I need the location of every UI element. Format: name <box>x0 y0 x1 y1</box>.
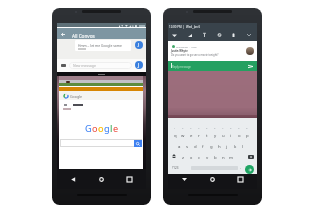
staticText: 8 <box>230 126 232 129</box>
staticText: 12:00 PM | Wed, Jan 6 <box>169 25 217 30</box>
button[interactable]: Back <box>182 177 187 182</box>
staticText: m <box>229 154 234 160</box>
staticText: Google <box>70 94 94 99</box>
staticText: Do you want to go see a movie tonight? <box>171 53 243 58</box>
button[interactable]: f <box>199 143 207 149</box>
staticText: h <box>218 143 221 149</box>
button[interactable]: Recents <box>238 177 243 182</box>
button[interactable]: Enter <box>245 165 254 174</box>
button[interactable]: Backspace <box>248 155 254 159</box>
staticText: k <box>234 143 237 149</box>
button[interactable]: b <box>211 154 219 160</box>
staticText: z <box>182 154 185 160</box>
staticText: s <box>186 143 189 149</box>
button[interactable]: i <box>227 132 235 138</box>
staticText: 6 <box>214 126 216 129</box>
staticText: o <box>238 132 241 138</box>
button[interactable]: Shift <box>172 154 176 158</box>
button[interactable]: j <box>223 143 231 149</box>
staticText: f <box>202 143 204 149</box>
button[interactable]: t <box>203 132 211 138</box>
button[interactable]: Expand <box>247 34 251 36</box>
staticText: a <box>178 143 181 149</box>
button[interactable]: Mobile signal <box>188 34 192 37</box>
button[interactable]: l <box>239 143 247 149</box>
button[interactable] <box>168 61 257 71</box>
button[interactable]: m <box>227 154 235 160</box>
button[interactable]: k <box>231 143 239 149</box>
button[interactable]: Do not disturb <box>217 33 222 37</box>
staticText: v <box>206 154 209 160</box>
button[interactable]: q <box>171 132 179 138</box>
button[interactable]: w <box>179 132 187 138</box>
staticText: New message <box>73 63 113 68</box>
button[interactable]: o <box>235 132 243 138</box>
staticText: l <box>242 143 244 149</box>
staticText: 2 <box>182 126 184 129</box>
staticText: u <box>222 132 225 138</box>
staticText: w <box>181 132 185 138</box>
button[interactable]: Battery <box>232 33 235 37</box>
button[interactable]: a <box>175 143 183 149</box>
staticText: 3 <box>190 126 192 129</box>
staticText: b <box>214 154 217 160</box>
staticText: 7 <box>222 126 224 129</box>
staticText: y <box>214 132 217 138</box>
staticText: g <box>210 143 213 149</box>
staticText: Instagram · now <box>176 45 212 50</box>
staticText: r <box>198 132 200 138</box>
staticText: J <box>138 62 140 68</box>
staticText: p <box>246 132 249 138</box>
button[interactable] <box>69 62 132 69</box>
staticText: 5 <box>206 126 208 129</box>
button[interactable]: Wi-Fi <box>172 34 177 37</box>
button[interactable]: s <box>183 143 191 149</box>
button[interactable]: c <box>195 154 203 160</box>
staticText: e <box>113 122 119 135</box>
button[interactable]: Back <box>71 177 76 182</box>
button[interactable]: Recents <box>127 177 132 182</box>
button[interactable]: y <box>211 132 219 138</box>
button[interactable]: Search <box>134 140 142 147</box>
button[interactable]: Home <box>210 177 215 182</box>
button[interactable]: r <box>195 132 203 138</box>
button[interactable]: x <box>187 154 195 160</box>
button[interactable] <box>57 28 146 40</box>
staticText: e <box>190 132 193 138</box>
staticText: i <box>230 132 232 138</box>
button[interactable]: g <box>207 143 215 149</box>
button[interactable]: n <box>219 154 227 160</box>
staticText: n <box>222 154 225 160</box>
staticText: g <box>104 122 110 135</box>
staticText: 0 <box>246 126 248 129</box>
staticText: J <box>138 42 140 48</box>
button[interactable] <box>60 139 142 147</box>
button[interactable]: d <box>191 143 199 149</box>
button[interactable]: ?123 <box>172 166 182 171</box>
button[interactable]: v <box>203 154 211 160</box>
button[interactable] <box>75 40 131 51</box>
staticText: t <box>206 132 208 138</box>
button[interactable]: u <box>219 132 227 138</box>
staticText: l <box>110 122 113 135</box>
button[interactable] <box>168 41 257 61</box>
button[interactable]: J <box>135 61 143 69</box>
button[interactable]: z <box>179 154 187 160</box>
staticText: x <box>190 154 193 160</box>
staticText: ✕ <box>250 156 253 159</box>
staticText: G <box>85 122 92 135</box>
button[interactable]: p <box>243 132 251 138</box>
staticText: c <box>198 154 201 160</box>
button[interactable]: Back <box>61 33 65 36</box>
button[interactable]: h <box>215 143 223 149</box>
button[interactable]: e <box>187 132 195 138</box>
button[interactable]: Send <box>248 65 253 68</box>
staticText: 4 <box>198 126 200 129</box>
button[interactable]: J <box>135 41 143 49</box>
button[interactable]: Home <box>99 177 104 182</box>
button[interactable]: Flashlight <box>203 33 206 37</box>
staticText: d <box>194 143 197 149</box>
staticText: 9 <box>238 126 240 129</box>
